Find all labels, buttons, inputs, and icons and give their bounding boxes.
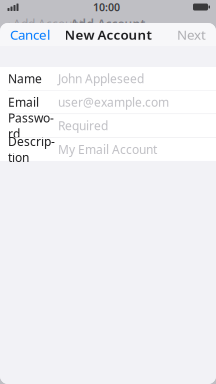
staticText: ‹ xyxy=(6,14,11,33)
staticText: 10:00 xyxy=(93,0,120,14)
staticText: Add Account xyxy=(13,16,83,32)
button[interactable]: Password xyxy=(0,114,216,138)
staticText: New Account xyxy=(64,26,151,43)
button[interactable]: Cancel xyxy=(2,21,58,48)
staticText: Email xyxy=(8,94,39,110)
button[interactable]: Description xyxy=(0,138,216,161)
staticText: Next xyxy=(177,26,206,43)
button[interactable]: Name xyxy=(0,67,216,91)
staticText: Cancel xyxy=(10,26,50,43)
button[interactable]: Email xyxy=(0,91,216,114)
staticText: John Appleseed xyxy=(58,70,144,86)
staticText: user@example.com xyxy=(58,94,169,110)
staticText: Description xyxy=(8,133,55,165)
staticText: Required xyxy=(58,118,108,134)
staticText: Name xyxy=(8,70,42,86)
staticText: Password xyxy=(8,110,54,142)
button[interactable]: Next xyxy=(169,21,214,48)
staticText: Add Account xyxy=(70,16,145,32)
staticText: My Email Account xyxy=(58,141,157,157)
